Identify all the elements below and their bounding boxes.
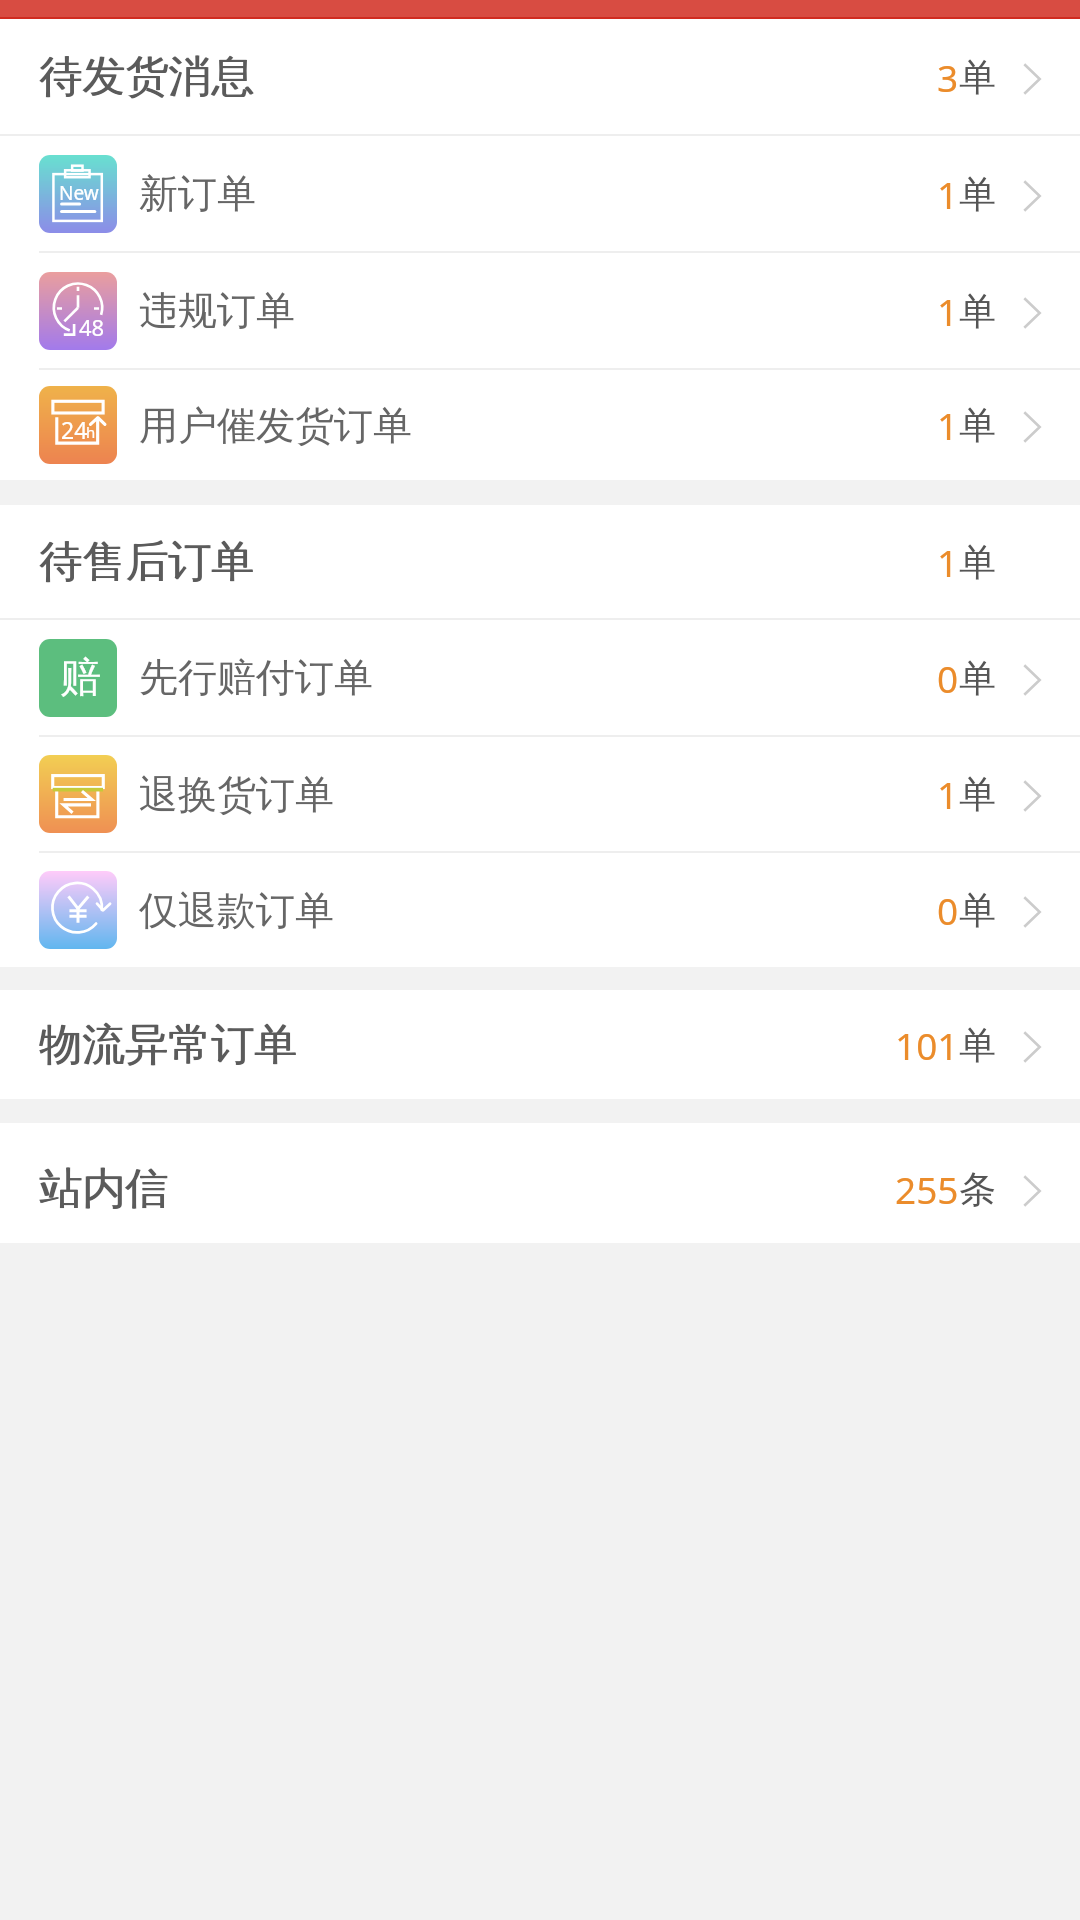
button[interactable]: New: [0, 136, 1080, 251]
staticText: 用户催发货订单: [139, 401, 412, 450]
staticText: 1: [937, 286, 959, 336]
staticText: 255: [895, 1164, 959, 1214]
button[interactable]: 物流异常订单: [0, 990, 1080, 1099]
staticText: 单: [959, 655, 996, 702]
staticText: 单: [959, 54, 996, 101]
button[interactable]: 站内信: [0, 1123, 1080, 1243]
button[interactable]: 待售后订单: [0, 505, 1080, 618]
staticText: 单: [959, 402, 996, 449]
staticText: 违规订单: [139, 286, 295, 335]
staticText: 单: [959, 771, 996, 818]
staticText: 0: [937, 653, 959, 703]
staticText: 待售后订单: [40, 535, 255, 589]
staticText: 退换货订单: [139, 770, 334, 819]
staticText: 0: [937, 885, 959, 935]
staticText: 1: [937, 769, 959, 819]
button[interactable]: 48: [0, 253, 1080, 368]
staticText: 单: [959, 1022, 996, 1069]
staticText: 单: [959, 887, 996, 934]
staticText: 站内信: [40, 1162, 169, 1216]
staticText: 1: [937, 169, 959, 219]
staticText: 待发货消息: [40, 50, 255, 104]
staticText: 48: [79, 312, 105, 342]
staticText: 待售后订单: [39, 535, 254, 589]
staticText: 物流异常订单: [40, 1018, 298, 1072]
staticText: 条: [959, 1166, 996, 1213]
staticText: 物流异常订单: [39, 1018, 297, 1072]
staticText: 1: [937, 537, 959, 587]
staticText: 24: [61, 414, 88, 445]
staticText: 3: [937, 52, 959, 102]
button[interactable]: 24: [0, 370, 1080, 480]
staticText: 待发货消息: [39, 50, 254, 104]
staticText: New: [59, 180, 99, 206]
button[interactable]: 退换货订单: [0, 737, 1080, 851]
staticText: 单: [959, 288, 996, 335]
staticText: 1: [937, 400, 959, 450]
staticText: 新订单: [139, 169, 256, 218]
button[interactable]: 赔: [0, 620, 1080, 735]
staticText: 站内信: [39, 1162, 168, 1216]
staticText: 仅退款订单: [139, 886, 334, 935]
staticText: h: [86, 422, 96, 442]
staticText: 单: [959, 539, 996, 586]
staticText: 101: [895, 1020, 959, 1070]
button[interactable]: 仅退款订单: [0, 853, 1080, 967]
button[interactable]: 待发货消息: [0, 19, 1080, 134]
staticText: 先行赔付订单: [139, 653, 373, 702]
staticText: 单: [959, 171, 996, 218]
staticText: 赔: [60, 652, 101, 704]
